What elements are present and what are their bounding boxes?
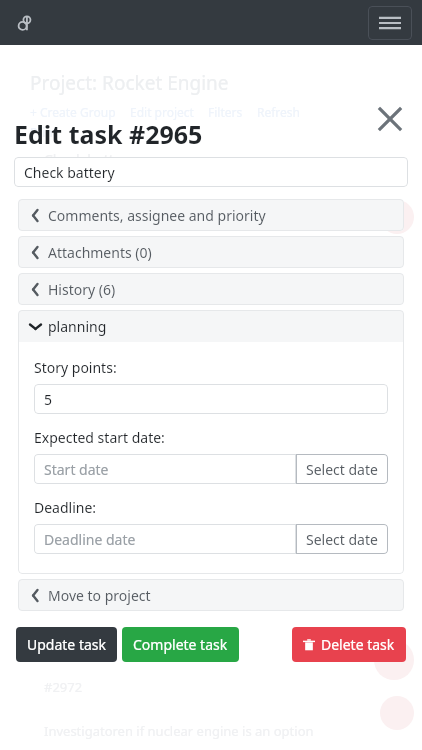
staticText: History (6) [48, 280, 116, 299]
staticText: Start date [44, 460, 109, 479]
button[interactable]: Update task [16, 627, 117, 662]
button[interactable]: Start date [34, 454, 296, 484]
staticText: Project: Rocket Engine [30, 70, 229, 96]
staticText: Comments, assignee and priority [48, 206, 266, 225]
button[interactable]: planning [18, 310, 404, 342]
staticText: #2971 [44, 636, 83, 654]
staticText: Select date [306, 530, 378, 549]
staticText: Print [30, 124, 58, 140]
staticText: 5 [44, 390, 53, 409]
staticText: + Create Group [30, 104, 116, 120]
staticText: Complete task [133, 635, 228, 654]
button[interactable]: Close [370, 99, 410, 139]
button[interactable]: Move to project [18, 579, 404, 611]
staticText: Check battery [44, 150, 135, 169]
staticText: planning [48, 317, 107, 336]
staticText: Update task [27, 635, 106, 654]
staticText: Delete task [321, 635, 395, 654]
button[interactable]: Comments, assignee and priority [18, 199, 404, 231]
staticText: Select date [306, 460, 378, 479]
button[interactable]: 5 [34, 384, 388, 414]
staticText: Investigatoren if nuclear engine is an o… [44, 722, 314, 740]
staticText: Check battery [24, 163, 115, 182]
staticText: Edit task #2965 [14, 117, 203, 151]
staticText: Deadline: [34, 498, 97, 517]
staticText: Attachments (0) [48, 243, 152, 262]
button[interactable]: History (6) [18, 273, 404, 305]
button[interactable]: Select date [296, 454, 388, 484]
button[interactable]: Complete task [122, 627, 239, 662]
staticText: Story points: [34, 358, 117, 377]
button[interactable]: Select date [296, 524, 388, 554]
button[interactable]: Attachments (0) [18, 236, 404, 268]
staticText: Refresh [257, 104, 301, 120]
staticText: Filters [208, 104, 243, 120]
button[interactable]: Check battery [14, 157, 408, 187]
button[interactable]: Home [12, 10, 38, 36]
staticText: Edit project [130, 104, 194, 120]
staticText: Move to project [48, 586, 151, 605]
staticText: Deadline date [44, 530, 136, 549]
button[interactable]: Delete task [292, 627, 406, 662]
button[interactable]: Menu [368, 6, 412, 40]
staticText: Expected start date: [34, 428, 165, 447]
button[interactable]: Deadline date [34, 524, 296, 554]
staticText: #2972 [44, 678, 83, 696]
